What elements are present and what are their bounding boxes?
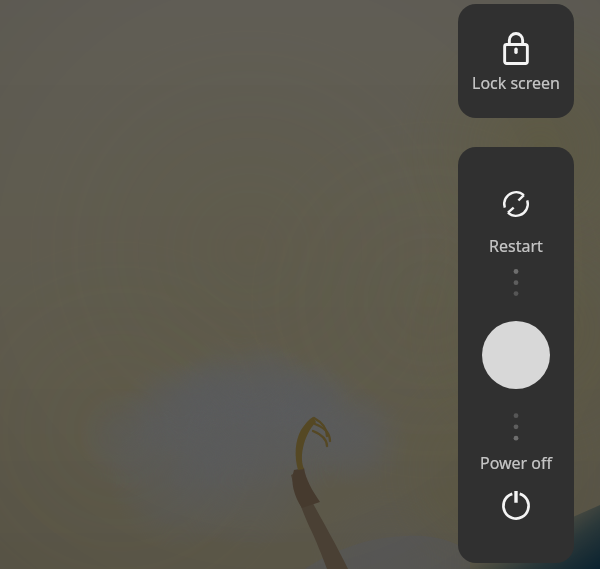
button[interactable]: Lock screen xyxy=(458,4,574,118)
staticText: Lock screen xyxy=(458,72,574,118)
button[interactable]: Restart xyxy=(458,175,574,259)
staticText: Restart xyxy=(458,235,574,319)
button[interactable]: Slide to power off xyxy=(482,321,550,389)
button[interactable]: Power off xyxy=(458,445,574,535)
staticText: Power off xyxy=(458,452,574,542)
